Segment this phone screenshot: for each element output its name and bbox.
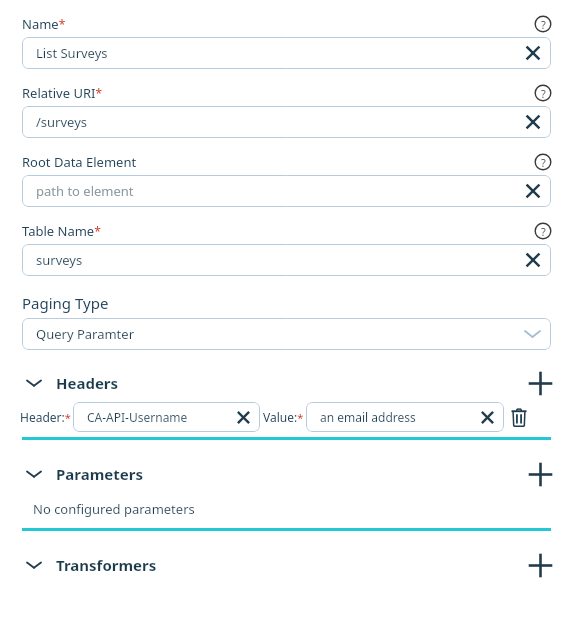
staticText: List Surveys <box>36 44 108 62</box>
staticText: Transformers <box>56 555 157 575</box>
button[interactable]: Delete header <box>507 405 531 429</box>
button[interactable]: Collapse Parameters <box>22 462 46 486</box>
staticText: path to element <box>36 182 134 200</box>
staticText: Parameters <box>56 464 143 484</box>
button[interactable]: /surveys <box>22 106 551 138</box>
staticText: ? <box>541 17 546 32</box>
button[interactable]: an email address <box>306 402 504 432</box>
button[interactable]: Help <box>533 83 553 103</box>
staticText: Name* <box>22 15 66 33</box>
button[interactable]: Add Transformers <box>525 550 555 580</box>
staticText: ? <box>541 155 546 170</box>
staticText: No configured parameters <box>33 500 195 518</box>
button[interactable]: Clear <box>519 246 547 274</box>
staticText: Header:* <box>20 409 71 425</box>
staticText: Root Data Element <box>22 153 137 171</box>
staticText: Headers <box>56 373 119 393</box>
staticText: Paging Type <box>22 293 109 313</box>
staticText: Relative URI* <box>22 84 103 102</box>
staticText: ? <box>541 224 546 239</box>
button[interactable]: surveys <box>22 244 551 276</box>
staticText: Query Paramter <box>36 325 135 343</box>
button[interactable]: Collapse Headers <box>22 371 46 395</box>
button[interactable]: Collapse Transformers <box>22 553 46 577</box>
button[interactable]: Help <box>533 152 553 172</box>
button[interactable]: Clear <box>519 177 547 205</box>
staticText: ? <box>541 86 546 101</box>
button[interactable]: Add Parameters <box>525 459 555 489</box>
button[interactable]: path to element <box>22 175 551 207</box>
staticText: /surveys <box>36 113 87 131</box>
staticText: Table Name* <box>22 222 101 240</box>
button[interactable]: Help <box>533 14 553 34</box>
button[interactable]: List Surveys <box>22 37 551 69</box>
staticText: CA-API-Username <box>87 409 188 425</box>
staticText: Value:* <box>263 409 304 425</box>
button[interactable]: Paging Type dropdown <box>22 318 551 350</box>
button[interactable]: Help <box>533 221 553 241</box>
button[interactable]: CA-API-Username <box>73 402 260 432</box>
button[interactable]: Clear <box>519 39 547 67</box>
button[interactable]: Clear <box>231 405 256 430</box>
staticText: surveys <box>36 251 83 269</box>
button[interactable]: Add Headers <box>525 368 555 398</box>
staticText: an email address <box>320 409 416 425</box>
button[interactable]: Clear <box>475 405 500 430</box>
button[interactable]: Clear <box>519 108 547 136</box>
